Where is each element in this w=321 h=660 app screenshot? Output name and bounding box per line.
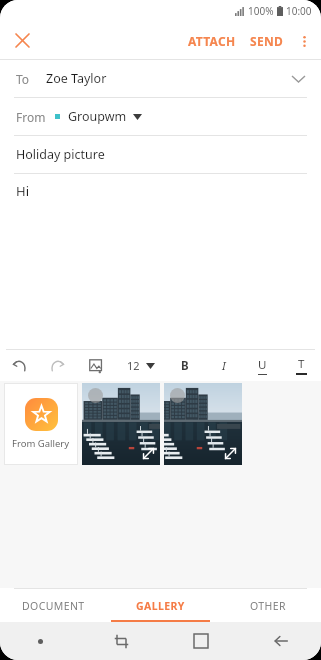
staticText: T	[298, 356, 305, 372]
button[interactable]: Italic	[204, 350, 243, 381]
button[interactable]: Underline	[243, 350, 282, 381]
staticText: From	[16, 109, 46, 125]
button[interactable]: Undo	[0, 350, 38, 381]
staticText: Hi	[16, 182, 29, 200]
button[interactable]: Back	[241, 622, 321, 660]
button[interactable]: Home	[161, 622, 241, 660]
button[interactable]: Redo	[38, 350, 77, 381]
staticText: To	[16, 71, 30, 87]
staticText: Holiday picture	[16, 146, 105, 163]
staticText: GALLERY	[136, 599, 185, 613]
staticText: I	[222, 358, 226, 374]
button[interactable]: Insert image	[77, 350, 116, 381]
button[interactable]: Bold	[165, 350, 204, 381]
button[interactable]: Menu dot	[0, 622, 81, 660]
button[interactable]: OTHER	[214, 589, 321, 622]
button[interactable]: SEND	[243, 26, 291, 56]
button[interactable]: 12	[116, 350, 165, 381]
staticText: From Gallery	[12, 437, 70, 450]
staticText: 10:00	[286, 4, 312, 18]
button[interactable]: Text color	[282, 350, 321, 381]
button[interactable]: ATTACH	[181, 26, 243, 56]
button[interactable]: Photo attachment	[164, 383, 242, 465]
button[interactable]: GALLERY	[107, 589, 214, 622]
button[interactable]: Recents	[81, 622, 161, 660]
staticText: Groupwm	[68, 108, 127, 125]
button[interactable]: To	[0, 60, 321, 97]
staticText: 12	[127, 358, 140, 373]
staticText: DOCUMENT	[22, 599, 85, 613]
staticText: ATTACH	[188, 33, 236, 49]
button[interactable]: From Gallery	[4, 383, 78, 465]
button[interactable]: Holiday picture	[0, 136, 321, 173]
button[interactable]: More options	[291, 28, 317, 54]
button[interactable]: From	[0, 98, 321, 135]
staticText: 100%	[248, 4, 274, 18]
staticText: U	[258, 357, 267, 373]
button[interactable]: Photo attachment	[82, 383, 160, 465]
staticText: SEND	[250, 33, 284, 49]
button[interactable]: DOCUMENT	[0, 589, 107, 622]
button[interactable]: Close	[7, 25, 38, 56]
staticText: OTHER	[250, 599, 286, 613]
staticText: Zoe Taylor	[46, 70, 107, 87]
button[interactable]: Hi	[0, 174, 321, 208]
staticText: B	[181, 358, 189, 374]
